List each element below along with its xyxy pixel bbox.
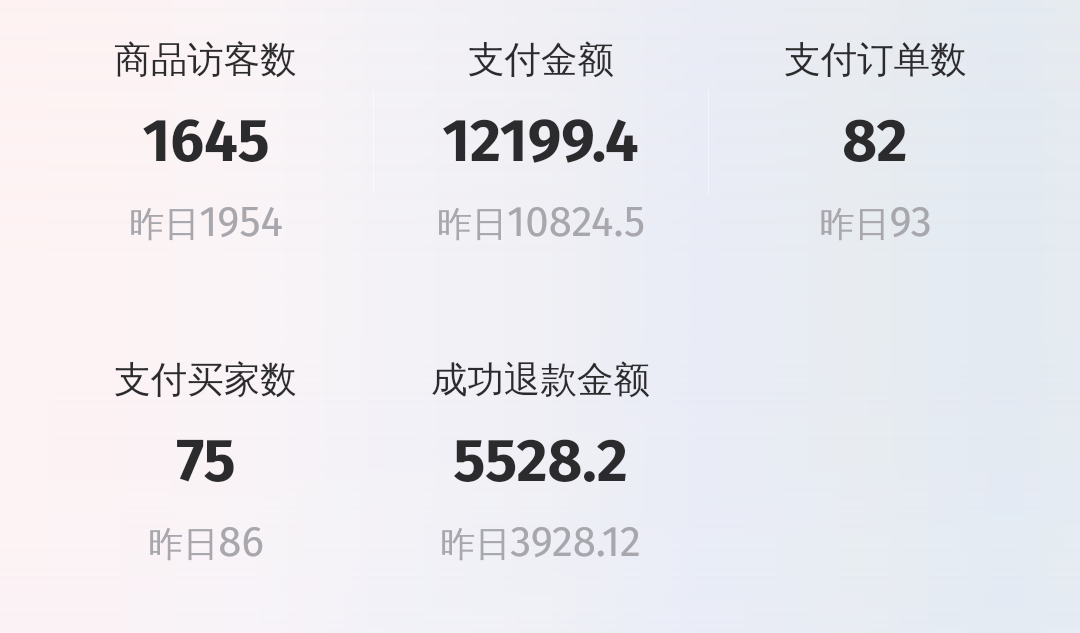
staticText: 成功退款金额 (431, 357, 650, 403)
staticText: 支付订单数 (784, 37, 967, 83)
staticText: 昨日3928.12 (440, 517, 641, 567)
button[interactable]: 支付买家数 75 (38, 357, 373, 567)
button[interactable]: 支付订单数 82 (708, 37, 1042, 247)
staticText: 支付买家数 (114, 357, 297, 403)
staticText: 5528.2 (453, 425, 628, 497)
staticText: 82 (842, 105, 908, 177)
staticText: 1645 (142, 105, 270, 177)
staticText: 商品访客数 (114, 37, 297, 83)
staticText: 昨日10824.5 (437, 197, 645, 247)
staticText: 75 (176, 425, 236, 497)
staticText: 支付金额 (468, 37, 614, 83)
staticText: 昨日93 (819, 197, 932, 247)
staticText: 昨日1954 (129, 197, 283, 247)
staticText: 12199.4 (442, 105, 639, 177)
staticText: 昨日86 (148, 517, 264, 567)
button[interactable]: 支付金额 12199.4 (373, 37, 708, 247)
button[interactable]: 商品访客数 1645 (38, 37, 373, 247)
button[interactable]: 成功退款金额 5528.2 (373, 357, 708, 567)
